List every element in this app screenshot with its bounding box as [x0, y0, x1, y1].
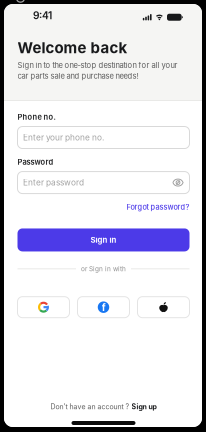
button[interactable]: Sign in with Apple: [137, 297, 189, 318]
staticText: Welcome back: [17, 39, 127, 57]
button[interactable]: Show password: [172, 178, 183, 187]
button[interactable]: Sign in: [17, 228, 189, 251]
staticText: Enter password: [23, 178, 84, 188]
staticText: 9:41: [33, 9, 52, 22]
staticText: f: [102, 302, 106, 314]
staticText: Don't have an account ?: [50, 403, 129, 411]
button[interactable]: Sign up: [131, 403, 156, 411]
button[interactable]: Phone number: [17, 126, 189, 148]
button[interactable]: Password: [17, 172, 189, 194]
staticText: Phone no.: [17, 112, 55, 121]
staticText: Password: [17, 157, 53, 166]
staticText: Enter your phone no.: [23, 132, 104, 142]
button[interactable]: Sign in with Facebook: [77, 297, 129, 318]
staticText: Sign in to the one-stop destination for …: [17, 60, 177, 81]
staticText: Sign up: [131, 403, 156, 411]
staticText: or Sign in with: [81, 265, 126, 273]
button[interactable]: Forgot password?: [126, 203, 189, 211]
staticText: Sign in: [90, 235, 116, 245]
staticText: Forgot password?: [126, 203, 189, 211]
button[interactable]: Sign in with Google: [17, 297, 69, 318]
